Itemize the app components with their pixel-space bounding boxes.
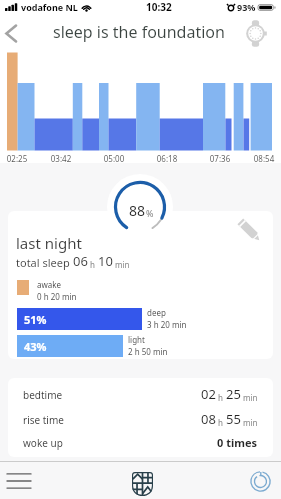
staticText: 08 bbox=[201, 410, 216, 428]
staticText: 0 times bbox=[217, 435, 258, 450]
staticText: 10 bbox=[98, 252, 113, 270]
staticText: awake bbox=[37, 279, 62, 290]
staticText: 10:32 bbox=[146, 0, 172, 14]
button[interactable]: bedtime bbox=[8, 387, 273, 411]
staticText: total sleep bbox=[16, 255, 73, 270]
staticText: 93% bbox=[237, 1, 256, 13]
button[interactable]: Sleep tracking bbox=[237, 461, 281, 499]
staticText: h bbox=[216, 392, 226, 403]
staticText: woke up bbox=[23, 436, 63, 450]
staticText: 05:00 bbox=[98, 153, 130, 164]
staticText: 02 bbox=[201, 385, 216, 403]
button[interactable]: Watch bbox=[240, 18, 270, 48]
staticText: 02:25 bbox=[1, 153, 33, 164]
staticText: deep bbox=[147, 307, 166, 318]
staticText: 43% bbox=[24, 339, 47, 354]
staticText: 25 bbox=[226, 385, 241, 403]
staticText: 03:42 bbox=[45, 153, 77, 164]
staticText: light bbox=[128, 334, 145, 345]
staticText: 3 h 20 min bbox=[147, 319, 187, 330]
staticText: h bbox=[88, 259, 98, 270]
staticText: % bbox=[146, 207, 154, 219]
staticText: bedtime bbox=[23, 388, 63, 402]
button[interactable]: Menu bbox=[0, 461, 44, 499]
staticText: sleep is the foundation bbox=[53, 21, 225, 43]
staticText: 2 h 50 min bbox=[128, 346, 168, 357]
staticText: 08:54 bbox=[248, 153, 280, 164]
button[interactable]: Edit bbox=[234, 215, 262, 243]
button[interactable]: rise time bbox=[8, 412, 273, 436]
staticText: 51% bbox=[24, 312, 47, 327]
staticText: min bbox=[241, 417, 258, 428]
staticText: 0 h 20 min bbox=[37, 291, 77, 302]
staticText: min bbox=[241, 392, 258, 403]
staticText: rise time bbox=[23, 413, 64, 427]
staticText: 06 bbox=[73, 252, 88, 270]
button[interactable]: woke up bbox=[8, 435, 273, 457]
button[interactable]: Back bbox=[0, 18, 30, 48]
staticText: min bbox=[113, 259, 130, 270]
staticText: h bbox=[216, 417, 226, 428]
staticText: 06:18 bbox=[151, 153, 183, 164]
staticText: vodafone NL bbox=[21, 1, 78, 13]
staticText: 88 bbox=[129, 201, 146, 220]
staticText: last night bbox=[16, 233, 82, 253]
button[interactable]: Home bbox=[118, 461, 164, 499]
staticText: 55 bbox=[226, 410, 241, 428]
staticText: 07:36 bbox=[204, 153, 236, 164]
